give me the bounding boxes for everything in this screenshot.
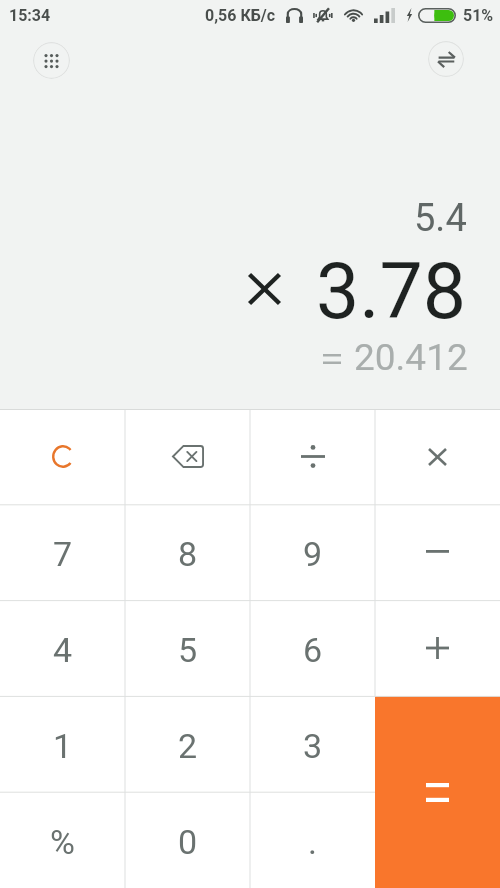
staticText: . <box>308 822 317 862</box>
button[interactable]: Divide <box>250 409 375 504</box>
staticText: 51% <box>463 6 494 25</box>
button[interactable]: Minus <box>375 504 500 600</box>
staticText: 5.4 <box>414 196 467 241</box>
button[interactable]: Clear <box>0 409 125 504</box>
button[interactable]: 5 <box>125 600 250 696</box>
button[interactable]: 2 <box>125 696 250 792</box>
staticText: 1 <box>53 726 73 766</box>
button[interactable]: . <box>250 792 375 888</box>
staticText: 3.78 <box>316 247 467 337</box>
staticText: 2 <box>178 726 198 766</box>
button[interactable]: 3 <box>250 696 375 792</box>
staticText: 20.412 <box>354 336 468 379</box>
button[interactable]: % <box>0 792 125 888</box>
button[interactable]: Convert <box>428 41 464 77</box>
staticText: 9 <box>303 534 323 574</box>
staticText: 15:34 <box>9 6 51 25</box>
button[interactable]: Multiply <box>375 409 500 504</box>
button[interactable]: 0 <box>125 792 250 888</box>
button[interactable]: 9 <box>250 504 375 600</box>
staticText: 0 <box>178 822 198 862</box>
staticText: 4 <box>53 630 73 670</box>
button[interactable]: 7 <box>0 504 125 600</box>
button[interactable]: 8 <box>125 504 250 600</box>
staticText: % <box>50 822 75 862</box>
button[interactable]: 4 <box>0 600 125 696</box>
staticText: 8 <box>178 534 198 574</box>
staticText: 6 <box>303 630 323 670</box>
staticText: 5 <box>178 630 198 670</box>
button[interactable]: 6 <box>250 600 375 696</box>
button[interactable]: Keypad modes <box>33 42 70 79</box>
button[interactable]: Plus <box>375 600 500 696</box>
button[interactable]: Backspace <box>125 409 250 504</box>
button[interactable]: Equals <box>375 696 500 888</box>
staticText: 3 <box>303 726 323 766</box>
button[interactable]: 1 <box>0 696 125 792</box>
staticText: 7 <box>53 534 73 574</box>
staticText: 0,56 КБ/с <box>205 6 276 25</box>
